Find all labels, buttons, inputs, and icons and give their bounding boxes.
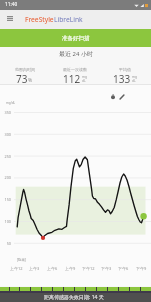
button[interactable]: 最近一次读数 xyxy=(50,62,100,84)
button[interactable]: Insulin pen xyxy=(117,92,126,101)
staticText: 下午12 xyxy=(82,266,95,271)
staticText: dL xyxy=(82,79,86,83)
staticText: FreeStyle xyxy=(25,15,54,24)
staticText: 上午3 xyxy=(29,266,40,271)
staticText: 范围内时间 xyxy=(15,67,35,72)
staticText: 最近 24 小时 xyxy=(59,50,93,58)
button[interactable]: 平均值 xyxy=(100,62,150,84)
button[interactable]: Food log xyxy=(108,92,117,101)
staticText: mg xyxy=(82,75,87,79)
staticText: 11:40 xyxy=(5,1,18,8)
staticText: 下午9 xyxy=(136,266,147,271)
staticText: 300 xyxy=(4,132,11,137)
staticText: 上午12 xyxy=(10,266,23,271)
staticText: 上午6 xyxy=(47,266,58,271)
staticText: 下午3 xyxy=(101,266,112,271)
button[interactable]: 范围内时间 xyxy=(0,62,50,84)
staticText: dL xyxy=(132,79,136,83)
staticText: 平均值 xyxy=(119,67,131,72)
staticText: 50 xyxy=(6,241,11,246)
staticText: 距离传感器失效日期: 14 天 xyxy=(44,294,104,301)
staticText: 73 xyxy=(16,72,28,86)
staticText: 150 xyxy=(4,197,11,202)
staticText: 下午6 xyxy=(118,266,129,271)
button[interactable]: Menu xyxy=(1,10,18,29)
staticText: 上午9 xyxy=(65,266,76,271)
staticText: 准备好扫描 xyxy=(62,35,90,42)
staticText: 250 xyxy=(4,154,11,159)
button[interactable]: 准备好扫描 xyxy=(0,29,151,47)
staticText: 100 xyxy=(4,219,11,224)
staticText: [隐藏] xyxy=(17,257,26,262)
staticText: mg/dL xyxy=(6,101,16,105)
staticText: 最近一次读数 xyxy=(63,67,87,72)
staticText: % xyxy=(28,77,33,84)
staticText: 200 xyxy=(4,175,11,180)
staticText: 350 xyxy=(4,110,11,115)
button[interactable]: 距离传感器失效日期: 14 天 xyxy=(0,293,151,302)
staticText: mg xyxy=(132,75,137,79)
staticText: 112 xyxy=(63,72,81,86)
staticText: 133 xyxy=(113,72,131,86)
staticText: LibreLink xyxy=(54,15,83,24)
